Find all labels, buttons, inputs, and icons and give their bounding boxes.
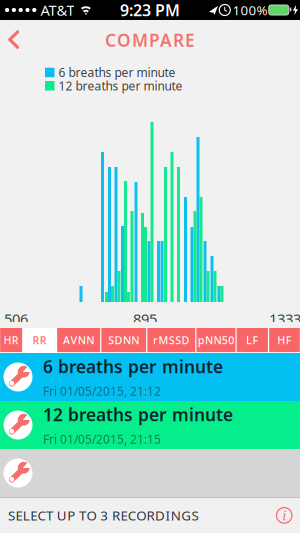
button[interactable]: LF [237,328,268,352]
staticText: SELECT UP TO 3 RECORDINGS [8,506,199,524]
button[interactable]: 6 breaths per minute [0,353,300,401]
button[interactable]: SDNN [101,328,146,352]
staticText: 895 [133,309,157,328]
staticText: i [282,506,286,524]
staticText: AT&T [40,0,74,20]
staticText: HR [3,333,19,347]
staticText: 1333 [269,309,300,328]
staticText: 100% [232,1,267,19]
staticText: 506 [4,309,28,328]
button[interactable]: HR [0,328,22,352]
staticText: rMSSD [153,333,190,347]
button[interactable]: 12 breaths per minute [0,401,300,449]
staticText: pNN50 [198,333,234,347]
staticText: AVNN [63,333,94,347]
button[interactable]: HF [269,328,300,352]
staticText: SDNN [108,333,139,347]
staticText: 12 breaths per minute [43,403,233,426]
staticText: Fri 01/05/2015, 21:15 [43,431,161,447]
staticText: 9:23 PM [120,0,180,21]
staticText: RR [32,333,47,347]
staticText: 6 breaths per minute [58,64,175,80]
staticText: Fri 01/05/2015, 21:12 [43,383,161,399]
button[interactable]: pNN50 [196,328,235,352]
button[interactable]: Back [0,20,19,52]
staticText: COMPARE [105,28,195,51]
staticText: 12 breaths per minute [58,78,182,94]
staticText: 6 breaths per minute [43,355,223,378]
staticText: HF [277,333,292,347]
button[interactable]: Add recording [0,449,300,497]
button[interactable]: RR [23,328,56,352]
button[interactable]: Info [276,508,300,523]
staticText: LF [246,333,258,347]
button[interactable]: rMSSD [147,328,195,352]
button[interactable]: AVNN [57,328,100,352]
